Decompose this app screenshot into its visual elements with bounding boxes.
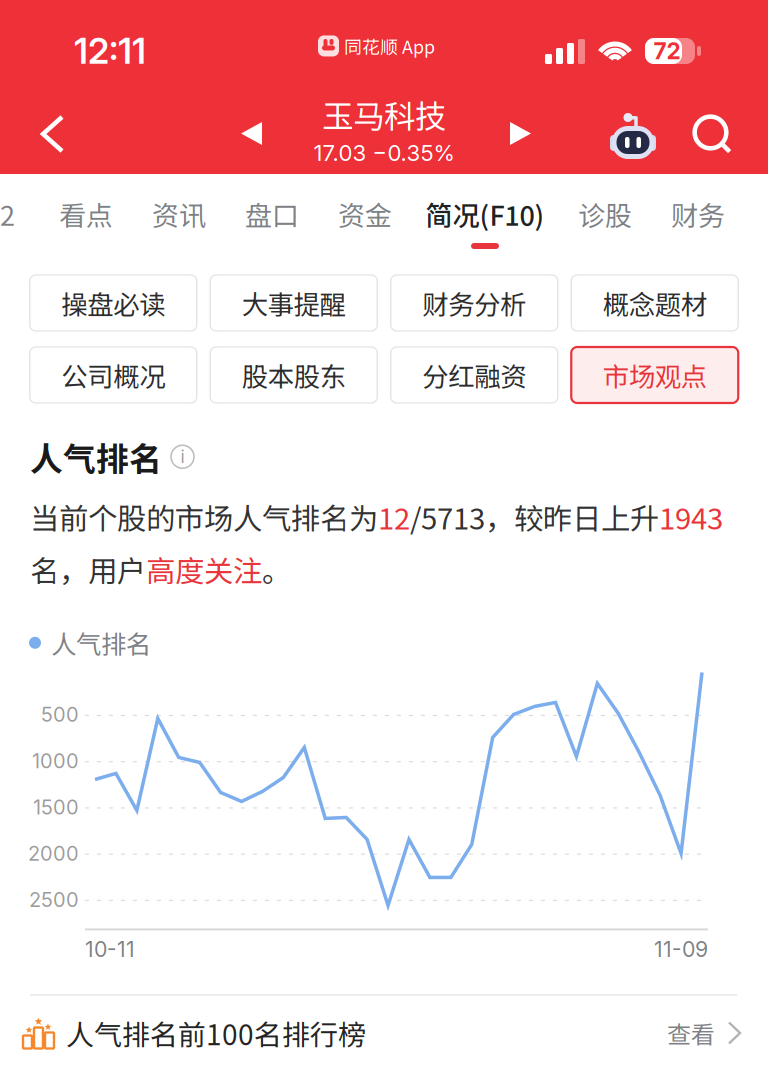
staticText: 简况(F10) [425, 194, 544, 234]
staticText: 11-09 [654, 936, 708, 962]
staticText: 公司概况 [61, 356, 165, 394]
button[interactable]: 诊股 [579, 174, 631, 249]
button[interactable]: 看点 [60, 174, 112, 249]
staticText: 500 [41, 702, 79, 727]
staticText: 同花顺 App [344, 33, 435, 59]
staticText: 财务分析 [422, 284, 526, 322]
staticText: 玉马科技 [322, 91, 446, 137]
button[interactable]: 股本股东 [210, 347, 377, 403]
staticText: 财务 [671, 194, 725, 234]
staticText: 1000 [32, 749, 79, 773]
staticText: 大事提醒 [242, 284, 346, 322]
button[interactable]: AI assistant [604, 109, 662, 167]
staticText: 人气排名前100名排行榜 [66, 1013, 366, 1053]
staticText: 1500 [33, 795, 79, 819]
staticText: 市场观点 [603, 356, 707, 394]
button[interactable]: 简况(F10) [432, 174, 538, 249]
staticText: 12:11 [74, 30, 146, 72]
staticText: 人气排名 [51, 624, 151, 661]
staticText: 股本股东 [242, 356, 346, 394]
staticText: 分红融资 [422, 356, 526, 394]
staticText: 12 [378, 495, 410, 538]
button[interactable]: 盘口 [246, 174, 298, 249]
staticText: 资金 [338, 194, 392, 234]
staticText: /5713，较昨日上升 [410, 495, 659, 538]
staticText: 名，用户 [30, 548, 146, 590]
button[interactable]: 概念题材 [571, 275, 738, 331]
button[interactable]: 分红融资 [391, 347, 558, 403]
button[interactable]: 财务 [672, 174, 724, 249]
staticText: 2000 [28, 841, 79, 866]
button[interactable]: 资金 [339, 174, 391, 249]
staticText: 看点 [59, 194, 113, 234]
staticText: 当前个股的市场人气排名为 [30, 495, 378, 538]
button[interactable]: 财务分析 [391, 275, 558, 331]
button[interactable]: 大事提醒 [210, 275, 377, 331]
button[interactable]: 资讯 [153, 174, 205, 249]
button[interactable]: 公司概况 [30, 347, 197, 403]
button[interactable]: 操盘必读 [30, 275, 197, 331]
staticText: 诊股 [578, 194, 632, 234]
button[interactable]: Next stock [496, 108, 545, 159]
staticText: 17.03 −0.35% [313, 139, 454, 166]
button[interactable]: Back [21, 103, 84, 165]
staticText: 概念题材 [603, 284, 707, 322]
staticText: 72 [653, 37, 680, 65]
staticText: 10-11 [85, 936, 135, 962]
button[interactable]: 市场观点 [571, 347, 738, 403]
staticText: 人气排名 [30, 433, 162, 480]
staticText: 2500 [29, 888, 79, 912]
staticText: 高度关注 [146, 548, 262, 590]
staticText: 盘口 [245, 194, 299, 234]
staticText: 。 [262, 548, 291, 590]
button[interactable]: Previous stock [227, 108, 276, 159]
button[interactable]: 人气排名前100名排行榜 [0, 996, 768, 1070]
staticText: 资讯 [152, 194, 206, 234]
button[interactable]: Search [684, 106, 744, 166]
staticText: 1943 [659, 495, 723, 538]
staticText: 查看 [667, 1016, 715, 1050]
staticText: 操盘必读 [61, 284, 165, 322]
staticText: 2 [0, 194, 15, 234]
staticText: i [180, 446, 184, 467]
